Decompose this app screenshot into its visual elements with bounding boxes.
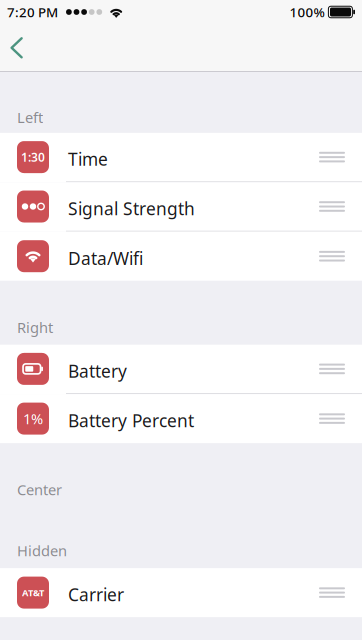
staticText: 100%: [289, 3, 324, 21]
staticText: Left: [17, 108, 43, 127]
button[interactable]: 1:30: [0, 133, 362, 182]
button[interactable]: Back: [0, 24, 39, 71]
staticText: Signal Strength: [68, 197, 195, 220]
staticText: Battery Percent: [68, 409, 194, 432]
button[interactable]: AT&T: [0, 568, 362, 617]
button[interactable]: Data/Wifi: [0, 232, 362, 281]
staticText: Data/Wifi: [68, 247, 143, 270]
button[interactable]: Battery: [0, 345, 362, 394]
button[interactable]: 1%: [0, 394, 362, 443]
staticText: 1%: [23, 409, 43, 428]
staticText: Center: [17, 480, 62, 499]
staticText: 1:30: [21, 149, 45, 165]
staticText: Hidden: [17, 541, 67, 560]
staticText: AT&T: [22, 586, 44, 599]
staticText: 7:20 PM: [7, 3, 58, 21]
staticText: Battery: [68, 359, 127, 382]
staticText: Time: [68, 148, 108, 171]
staticText: Right: [17, 317, 53, 337]
staticText: Carrier: [68, 583, 124, 606]
button[interactable]: Signal Strength: [0, 182, 362, 232]
